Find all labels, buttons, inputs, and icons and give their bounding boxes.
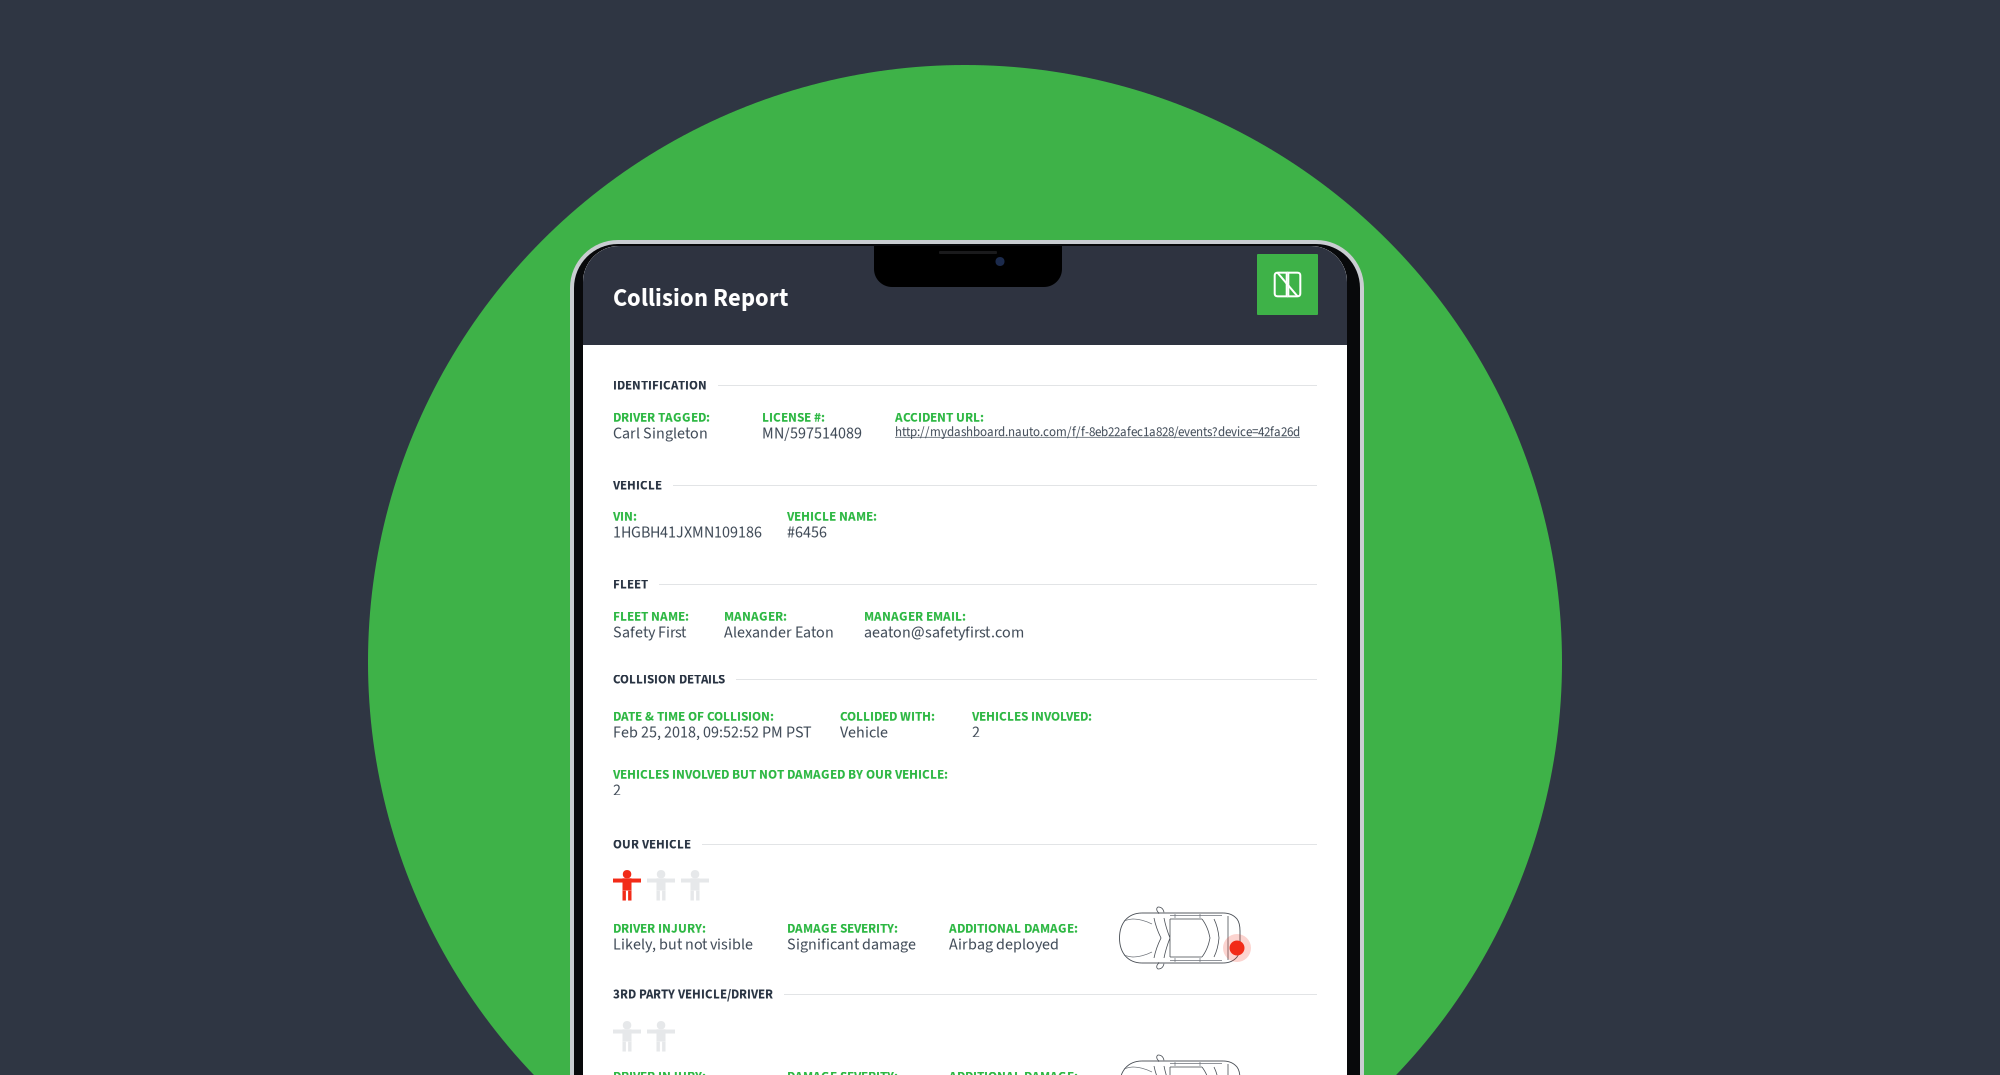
staticText: DAMAGE SEVERITY: xyxy=(787,1067,898,1075)
staticText: VEHICLE NAME: xyxy=(787,507,877,526)
staticText: Significant damage xyxy=(787,933,916,956)
staticText: DRIVER TAGGED: xyxy=(613,408,710,427)
staticText: ADDITIONAL DAMAGE: xyxy=(949,1067,1078,1075)
staticText: #6456 xyxy=(787,521,827,544)
staticText: ACCIDENT URL: xyxy=(895,408,984,427)
staticText: VEHICLES INVOLVED: xyxy=(972,707,1092,726)
staticText: IDENTIFICATION xyxy=(613,376,707,395)
staticText: LICENSE #: xyxy=(762,408,825,427)
staticText: COLLISION DETAILS xyxy=(613,670,725,689)
staticText: FLEET NAME: xyxy=(613,607,689,626)
staticText: OUR VEHICLE xyxy=(613,835,691,854)
staticText: 2 xyxy=(972,721,980,744)
staticText: COLLIDED WITH: xyxy=(840,707,935,726)
staticText: DATE & TIME OF COLLISION: xyxy=(613,707,774,726)
staticText: http://mydashboard.nauto.com/f/f-8eb22af… xyxy=(895,423,1300,441)
staticText: VEHICLES INVOLVED BUT NOT DAMAGED BY OUR… xyxy=(613,765,948,784)
staticText: DAMAGE SEVERITY: xyxy=(787,919,898,938)
staticText: Carl Singleton xyxy=(613,422,708,445)
staticText: aeaton@safetyfirst.com xyxy=(864,621,1024,644)
staticText: DRIVER INJURY: xyxy=(613,919,706,938)
staticText: VIN: xyxy=(613,507,637,526)
staticText: Likely, but not visible xyxy=(613,933,753,956)
staticText: 2 xyxy=(613,779,621,802)
staticText: Collision Report xyxy=(613,281,788,316)
staticText: Alexander Eaton xyxy=(724,621,834,644)
staticText: Safety First xyxy=(613,621,686,644)
staticText: ADDITIONAL DAMAGE: xyxy=(949,919,1078,938)
staticText: MANAGER: xyxy=(724,607,787,626)
staticText: Airbag deployed xyxy=(949,933,1059,956)
staticText: MANAGER EMAIL: xyxy=(864,607,966,626)
button[interactable]: Nauto dashboard xyxy=(1257,254,1318,315)
staticText: 3RD PARTY VEHICLE/DRIVER xyxy=(613,985,773,1004)
staticText: MN/597514089 xyxy=(762,422,862,445)
staticText: DRIVER INJURY: xyxy=(613,1067,706,1075)
staticText: FLEET xyxy=(613,575,648,594)
staticText: VEHICLE xyxy=(613,476,662,495)
staticText: 1HGBH41JXMN109186 xyxy=(613,521,762,544)
staticText: Vehicle xyxy=(840,721,888,744)
staticText: Feb 25, 2018, 09:52:52 PM PST xyxy=(613,721,812,744)
